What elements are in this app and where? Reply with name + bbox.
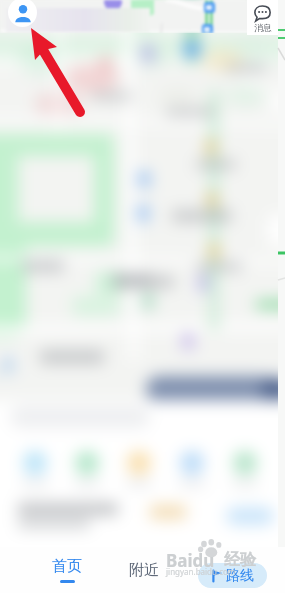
staticText: 经验 [224,550,256,570]
staticText: Baidu [166,549,215,572]
button[interactable]: 消息 [247,0,278,35]
staticText: 路线 [226,567,254,585]
staticText: 消息 [254,22,272,33]
button[interactable]: 首页 [37,547,97,593]
staticText: 附近 [129,561,159,580]
button[interactable]: 附近 [114,547,174,593]
staticText: 首页 [52,557,82,576]
button[interactable]: 路线 [198,563,267,588]
button[interactable]: Profile [8,0,37,27]
staticText: jingyan.baidu.com [166,566,236,577]
